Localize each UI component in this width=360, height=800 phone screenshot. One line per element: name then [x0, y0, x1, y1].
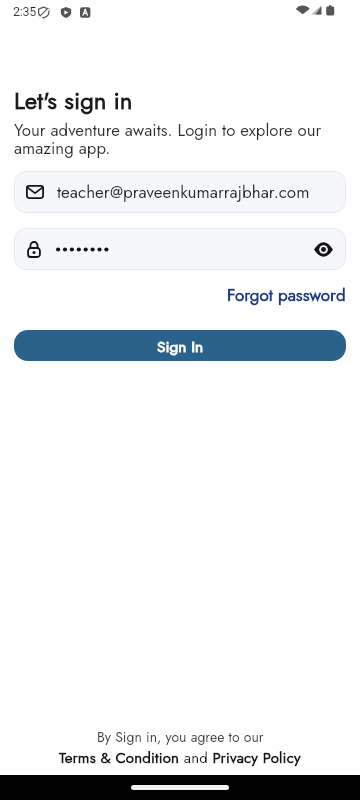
button[interactable]: [314, 243, 333, 256]
staticText: Let's sign in: [14, 83, 133, 118]
staticText: 2:35: [13, 4, 36, 19]
button[interactable]: Sign In: [14, 330, 346, 361]
button[interactable]: Forgot password: [227, 283, 346, 308]
staticText: Sign In: [157, 335, 204, 357]
staticText: teacher@praveenkumarrajbhar.com: [57, 180, 310, 205]
button[interactable]: teacher@praveenkumarrajbhar.com: [14, 171, 346, 213]
staticText: Your adventure awaits. Login to explore …: [14, 118, 322, 160]
button[interactable]: Terms & Condition and Privacy Policy: [59, 747, 301, 769]
staticText: By Sign in, you agree to our: [97, 727, 264, 747]
button[interactable]: [14, 228, 346, 270]
